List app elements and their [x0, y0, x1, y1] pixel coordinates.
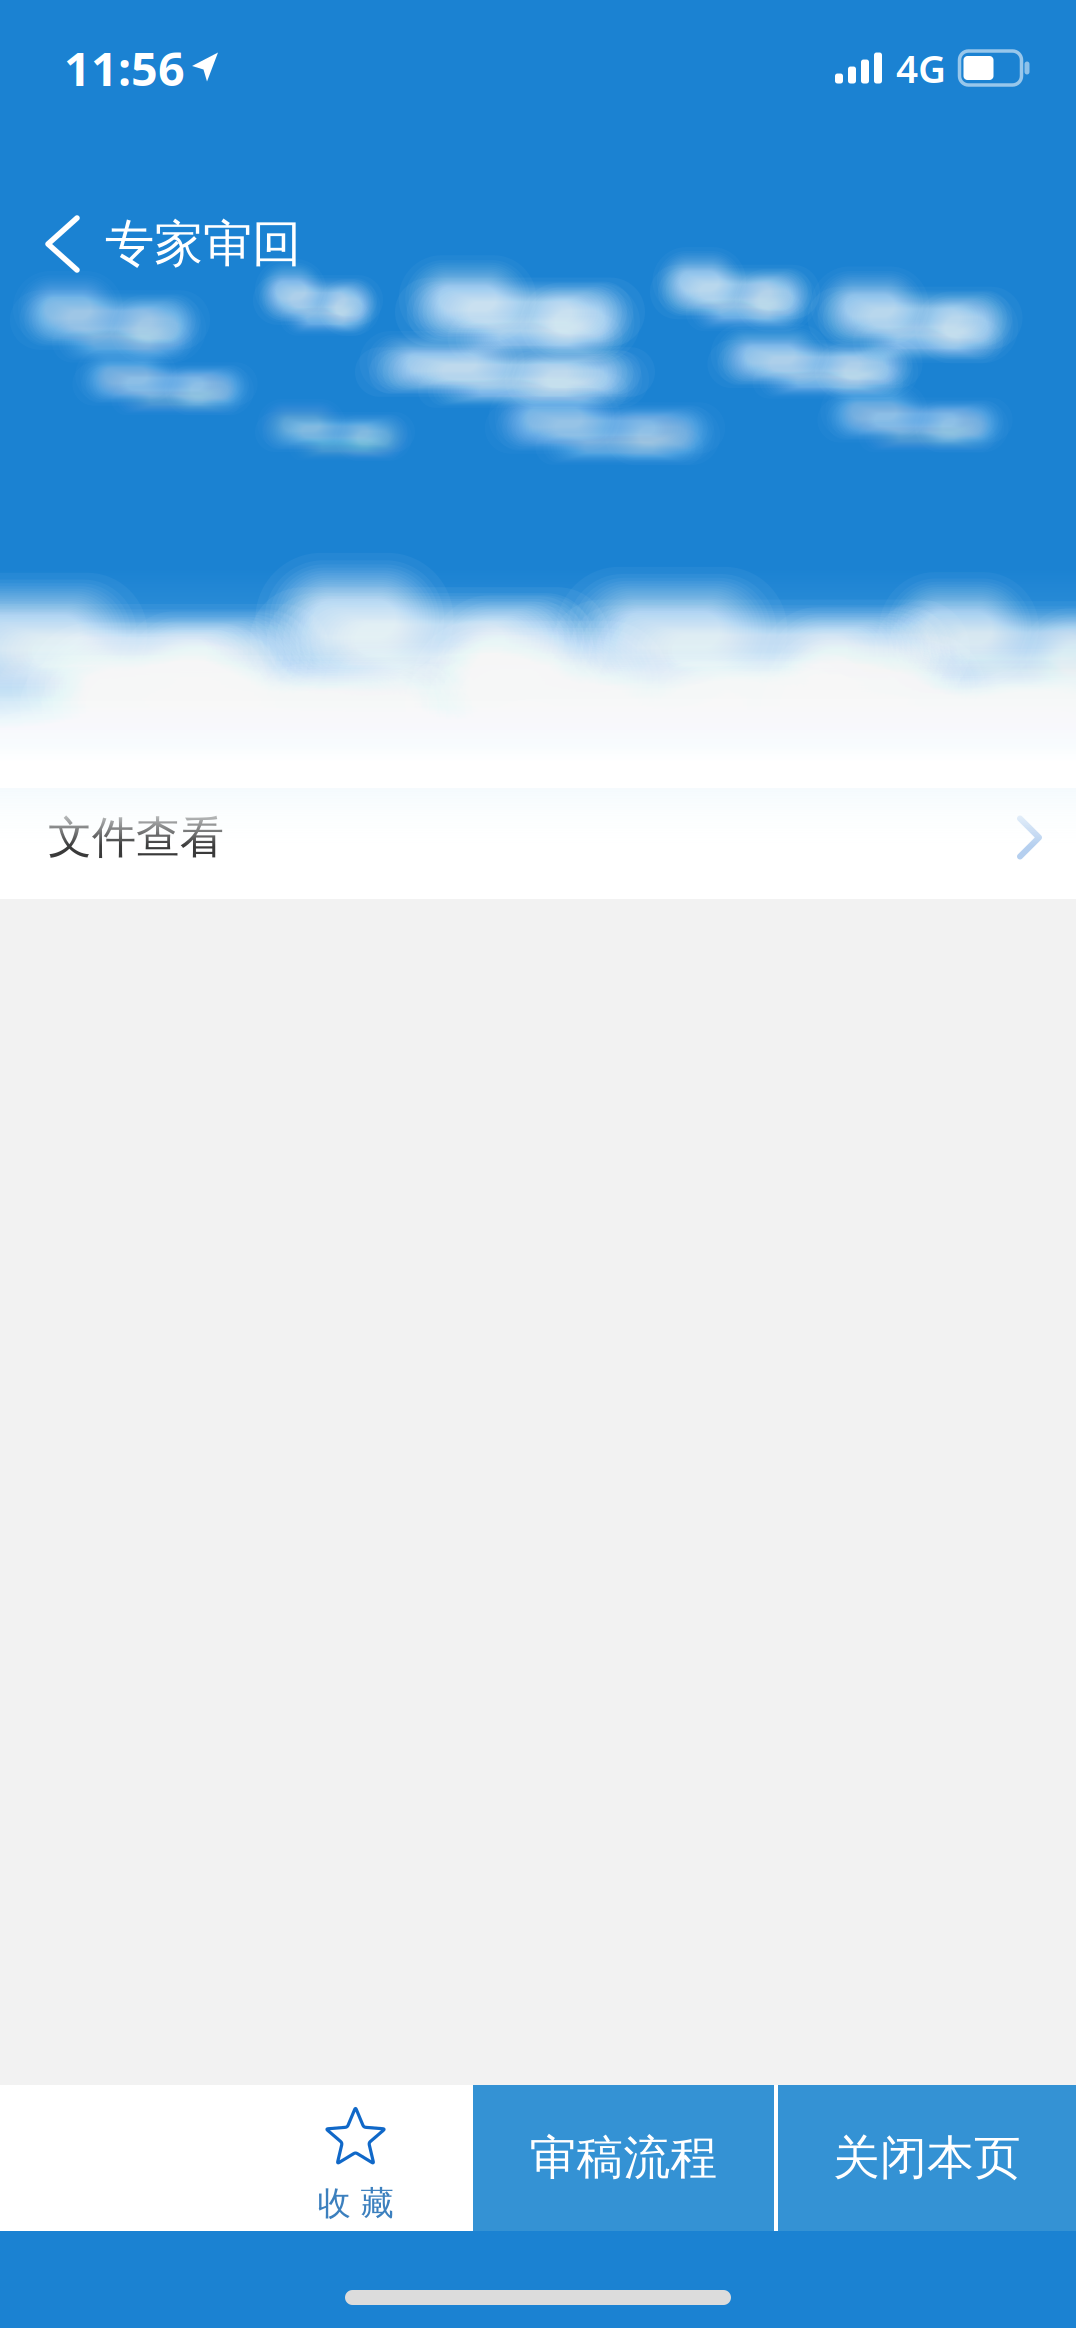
staticText: 4G	[896, 42, 946, 94]
button[interactable]: 审稿流程	[473, 2085, 774, 2231]
staticText: 收 藏	[317, 2183, 393, 2224]
staticText: 审稿流程	[529, 2129, 717, 2187]
staticText: 文件查看	[48, 810, 224, 864]
button[interactable]: 文件查看	[0, 790, 1076, 899]
staticText: 专家审回	[105, 214, 301, 274]
button[interactable]: 专家审回	[0, 190, 325, 298]
staticText: 11:56	[64, 37, 185, 99]
button[interactable]: 关闭本页	[778, 2085, 1076, 2231]
staticText: 关闭本页	[833, 2129, 1021, 2187]
button[interactable]: 收 藏	[264, 2085, 447, 2231]
